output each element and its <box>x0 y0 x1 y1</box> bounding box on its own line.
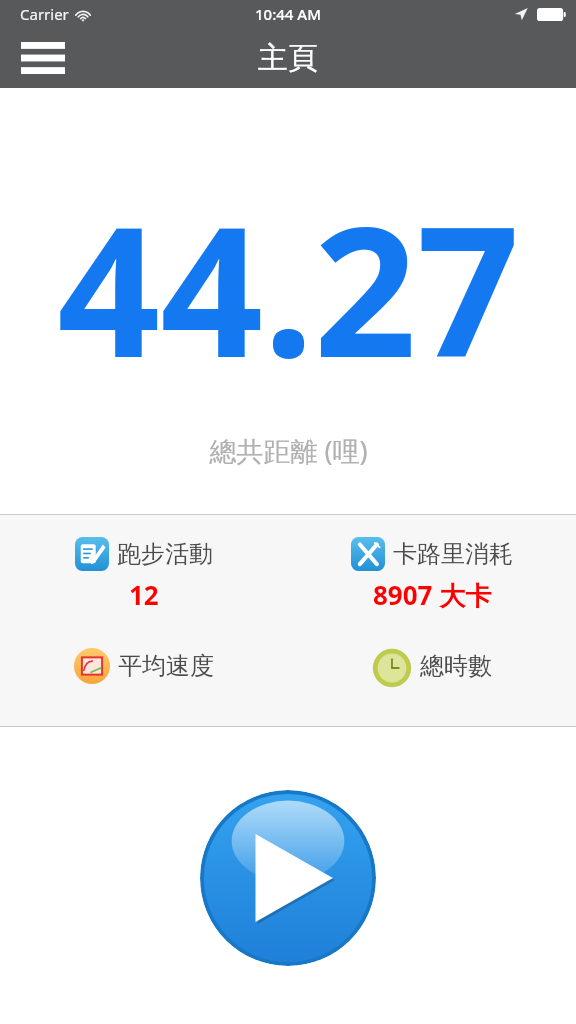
button[interactable]: 平均速度 <box>0 648 288 684</box>
staticText: 總共距離 (哩) <box>209 432 368 469</box>
staticText: 8907 大卡 <box>373 577 492 613</box>
staticText: 44.27 <box>57 165 520 410</box>
staticText: 12 <box>129 577 159 612</box>
button[interactable]: 總時數 <box>288 648 576 684</box>
staticText: 主頁 <box>258 39 318 77</box>
staticText: 跑步活動 <box>117 539 213 569</box>
button[interactable]: 跑步活動 <box>0 537 288 624</box>
staticText: 平均速度 <box>118 651 214 681</box>
staticText: Carrier <box>20 4 69 24</box>
staticText: 卡路里消耗 <box>393 539 513 569</box>
button[interactable]: Menu <box>14 35 72 81</box>
staticText: 10:44 AM <box>255 4 321 24</box>
button[interactable]: Start <box>200 790 376 966</box>
button[interactable]: 卡路里消耗 <box>288 537 576 624</box>
staticText: 總時數 <box>420 651 492 681</box>
